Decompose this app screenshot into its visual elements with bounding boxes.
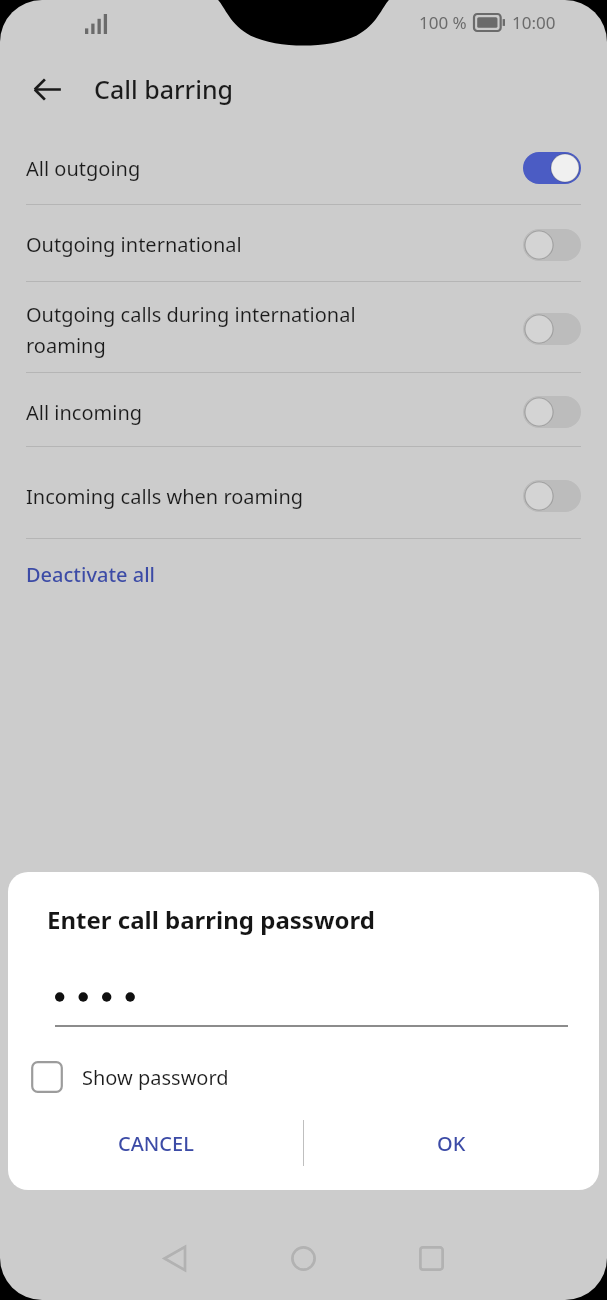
button[interactable]: CANCEL xyxy=(8,1112,303,1174)
staticText: All outgoing xyxy=(26,155,141,182)
staticText: Incoming calls when roaming xyxy=(26,483,304,510)
button[interactable]: Outgoing calls during international roam… xyxy=(0,286,607,372)
staticText: 100 % xyxy=(419,11,467,34)
button[interactable]: Back xyxy=(140,1223,210,1293)
staticText: Enter call barring password xyxy=(47,903,375,936)
staticText: CANCEL xyxy=(118,1130,194,1157)
button[interactable]: Recent apps xyxy=(396,1223,466,1293)
button[interactable]: Outgoing international xyxy=(0,208,607,281)
staticText: All incoming xyxy=(26,399,143,426)
button[interactable]: All incoming xyxy=(0,378,607,446)
staticText: Deactivate all xyxy=(26,561,155,588)
button[interactable]: All outgoing xyxy=(0,132,607,204)
button[interactable]: OK xyxy=(304,1112,599,1174)
button[interactable]: Deactivate all xyxy=(0,546,607,602)
staticText: Call barring xyxy=(94,72,234,106)
staticText: Show password xyxy=(82,1064,229,1091)
button[interactable]: Home xyxy=(268,1223,338,1293)
staticText: 10:00 xyxy=(512,11,556,34)
staticText: Outgoing calls during international roam… xyxy=(26,301,356,358)
staticText: OK xyxy=(437,1130,466,1157)
button[interactable]: Show password xyxy=(8,1048,599,1106)
staticText: Outgoing international xyxy=(26,231,242,258)
button[interactable]: Incoming calls when roaming xyxy=(0,462,607,530)
button[interactable]: Back xyxy=(20,62,74,116)
